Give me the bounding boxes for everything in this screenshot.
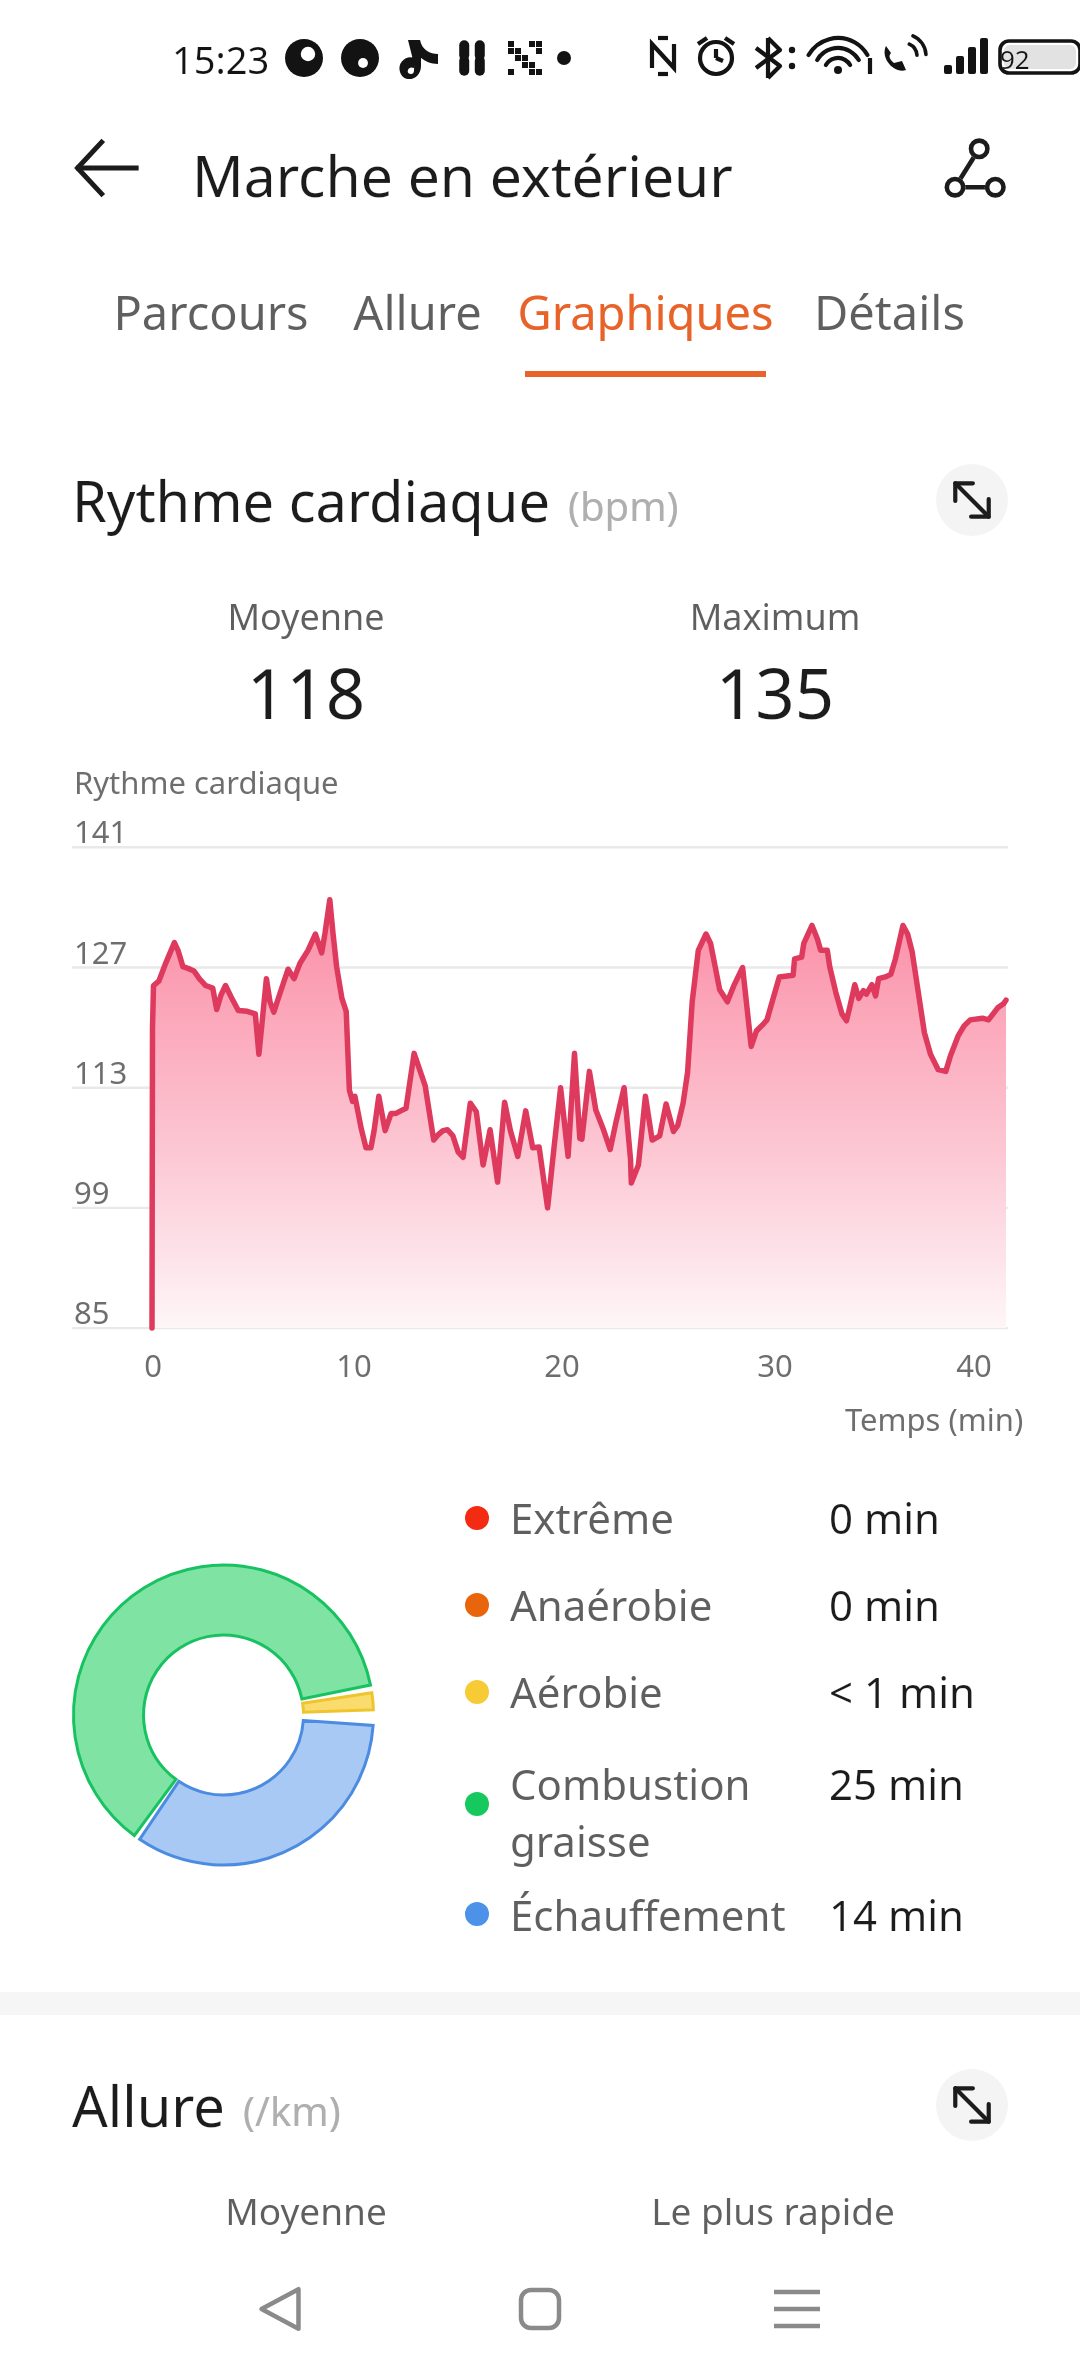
staticText: (bpm): [568, 478, 679, 532]
staticText: 14 min: [829, 1886, 965, 1943]
button[interactable]: Retour: [220, 2249, 340, 2369]
staticText: Le plus rapide: [573, 2185, 973, 2235]
staticText: Rythme cardiaque: [72, 462, 550, 538]
button[interactable]: Parcours: [81, 280, 341, 380]
staticText: Graphiques: [517, 280, 774, 344]
staticText: 135: [575, 645, 975, 739]
button[interactable]: Récents: [737, 2249, 857, 2369]
button[interactable]: Agrandir: [936, 464, 1008, 536]
staticText: 25 min: [829, 1755, 965, 1812]
button[interactable]: Agrandir: [936, 2069, 1008, 2141]
staticText: Combustion graisse: [510, 1755, 751, 1869]
staticText: 0 min: [829, 1489, 941, 1546]
staticText: Anaérobie: [510, 1576, 713, 1633]
staticText: 127: [74, 931, 128, 973]
staticText: 10: [294, 1344, 414, 1386]
button[interactable]: Allure: [287, 280, 547, 380]
staticText: (/km): [243, 2083, 341, 2137]
staticText: Allure: [72, 2067, 225, 2143]
staticText: Moyenne: [106, 2185, 506, 2235]
staticText: Détails: [814, 280, 965, 344]
staticText: 92: [1000, 41, 1030, 76]
staticText: Maximum: [575, 592, 975, 641]
staticText: Rythme cardiaque: [74, 761, 339, 803]
staticText: 30: [715, 1344, 835, 1386]
staticText: < 1 min: [829, 1663, 975, 1720]
staticText: Moyenne: [106, 592, 506, 641]
staticText: 85: [74, 1291, 110, 1333]
staticText: 40: [914, 1344, 1034, 1386]
staticText: 113: [74, 1051, 128, 1093]
staticText: Extrême: [510, 1489, 674, 1546]
staticText: 0: [93, 1344, 213, 1386]
staticText: Marche en extérieur: [192, 136, 733, 214]
staticText: Temps (min): [845, 1398, 1024, 1440]
button[interactable]: Share: [926, 124, 1020, 212]
button[interactable]: Détails: [759, 280, 1019, 380]
staticText: Parcours: [113, 280, 309, 344]
staticText: 20: [502, 1344, 622, 1386]
staticText: Échauffement: [510, 1886, 786, 1943]
staticText: 15:23: [172, 33, 270, 85]
button[interactable]: Accueil: [480, 2249, 600, 2369]
staticText: 118: [106, 645, 506, 739]
staticText: Aérobie: [510, 1663, 663, 1720]
staticText: Allure: [353, 280, 482, 344]
button[interactable]: Back: [60, 124, 154, 212]
button[interactable]: Graphiques: [515, 280, 775, 380]
staticText: 99: [74, 1171, 110, 1213]
staticText: 0 min: [829, 1576, 941, 1633]
staticText: 141: [74, 810, 128, 852]
